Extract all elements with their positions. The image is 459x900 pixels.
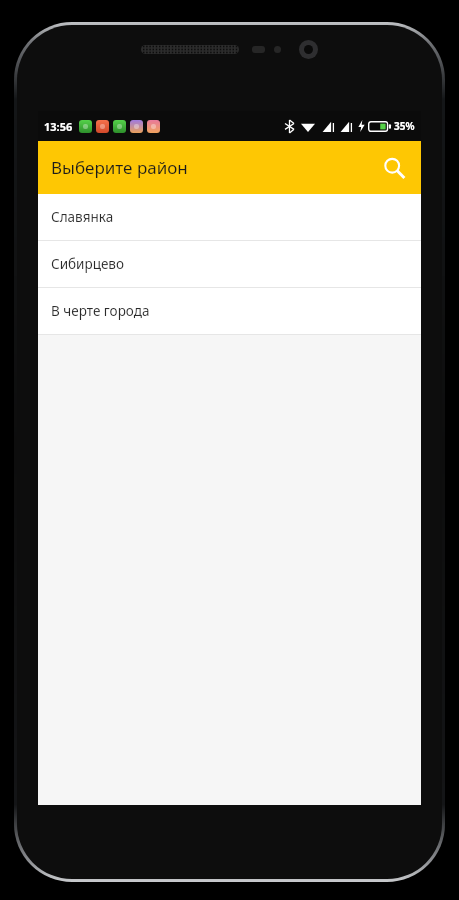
staticText: Выберите район [51, 156, 188, 179]
button[interactable]: Поиск [371, 145, 417, 191]
button[interactable]: Славянка [38, 194, 421, 240]
button[interactable]: Сибирцево [38, 241, 421, 287]
staticText: Сибирцево [51, 255, 125, 273]
staticText: В черте города [51, 302, 150, 320]
staticText: 35% [394, 119, 415, 133]
button[interactable]: В черте города [38, 288, 421, 334]
staticText: Славянка [51, 208, 114, 226]
staticText: 13:56 [44, 119, 73, 134]
